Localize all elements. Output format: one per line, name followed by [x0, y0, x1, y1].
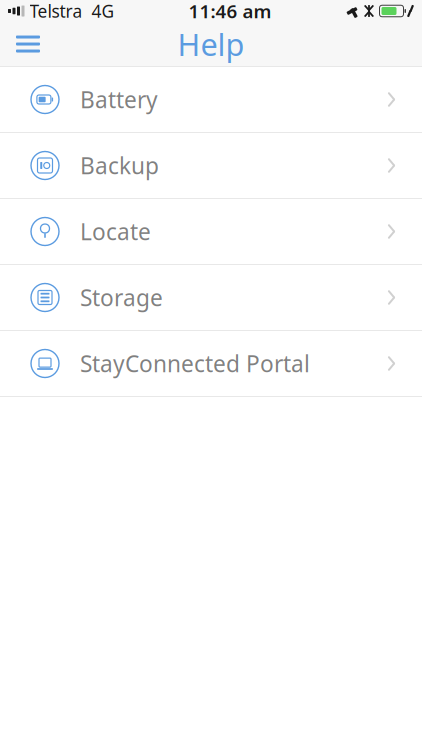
button[interactable]: Menu — [0, 22, 56, 66]
staticText: Battery — [80, 84, 158, 114]
button[interactable]: Locate — [0, 199, 422, 264]
staticText: Help — [177, 24, 244, 64]
staticText: Telstra — [29, 0, 82, 22]
staticText: StayConnected Portal — [80, 348, 310, 378]
button[interactable]: Battery — [0, 67, 422, 132]
staticText: 11:46 am — [188, 0, 271, 23]
staticText: 4G — [91, 0, 114, 22]
button[interactable]: Backup — [0, 133, 422, 198]
staticText: Backup — [80, 150, 159, 180]
button[interactable]: Storage — [0, 265, 422, 330]
button[interactable]: StayConnected Portal — [0, 331, 422, 396]
staticText: Locate — [80, 216, 151, 246]
staticText: Storage — [80, 282, 163, 312]
